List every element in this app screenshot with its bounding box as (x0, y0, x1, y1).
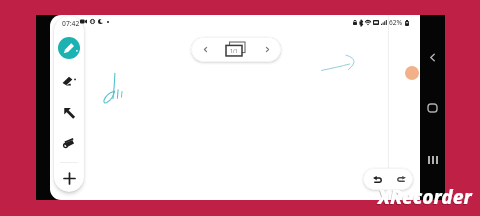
button[interactable]: Redo (391, 171, 411, 187)
staticText: XRecorder (378, 184, 472, 210)
button[interactable]: Back (420, 44, 445, 70)
button[interactable]: Eraser (57, 132, 81, 152)
button[interactable]: Home (420, 95, 445, 121)
staticText: XRecorder (377, 185, 471, 211)
button[interactable]: Next page (256, 37, 279, 62)
button[interactable]: Add page (57, 168, 81, 188)
button[interactable]: Recent apps (420, 147, 445, 173)
staticText: 62% (389, 18, 403, 27)
button[interactable]: Pages (222, 39, 250, 60)
staticText: 1/1 (230, 48, 238, 55)
button[interactable]: Undo (367, 171, 387, 187)
button[interactable]: Select (57, 102, 81, 122)
staticText: 07:42 (62, 19, 80, 28)
button[interactable]: Previous page (194, 37, 217, 62)
button[interactable]: Pen tool (58, 37, 80, 59)
button[interactable]: Highlighter (57, 70, 81, 90)
